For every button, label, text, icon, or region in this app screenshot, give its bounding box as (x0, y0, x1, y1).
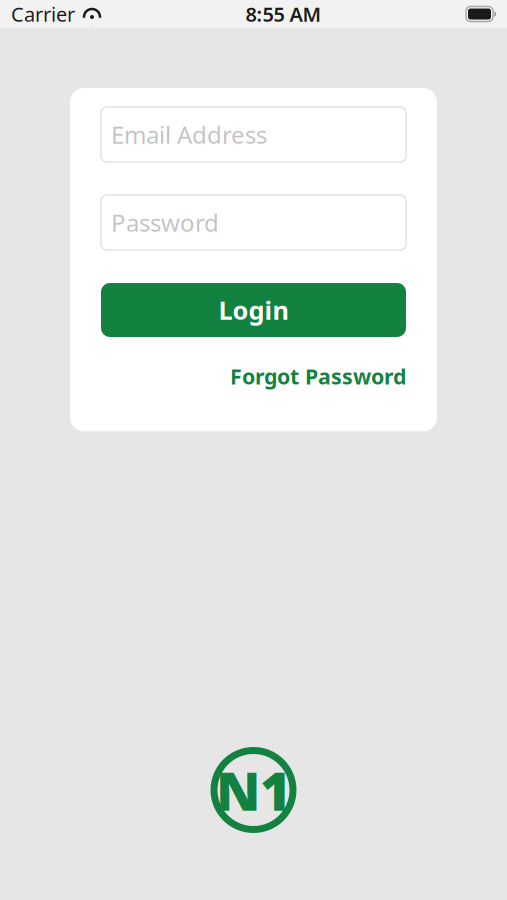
button[interactable]: Login (101, 283, 406, 337)
staticText: Carrier (11, 1, 75, 27)
staticText: Forgot Password (230, 362, 406, 390)
staticText: Password (111, 207, 219, 238)
staticText: N1 (216, 755, 291, 825)
staticText: Login (218, 293, 288, 327)
staticText: 8:55 AM (245, 1, 321, 27)
staticText: Email Address (111, 119, 267, 150)
button[interactable]: Forgot Password (230, 362, 406, 390)
